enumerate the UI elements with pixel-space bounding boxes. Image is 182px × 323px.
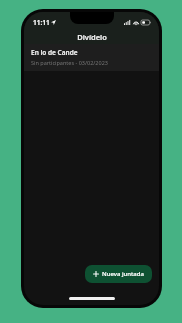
staticText: Nueva juntada xyxy=(102,270,144,278)
button[interactable]: En lo de Cande xyxy=(24,44,159,71)
staticText: Sin participantes - 03/02/2023 xyxy=(31,59,108,66)
staticText: Divídelo xyxy=(77,32,107,42)
staticText: 11:11 xyxy=(33,18,50,27)
button[interactable]: Nueva juntada xyxy=(85,265,152,283)
staticText: En lo de Cande xyxy=(31,48,78,57)
